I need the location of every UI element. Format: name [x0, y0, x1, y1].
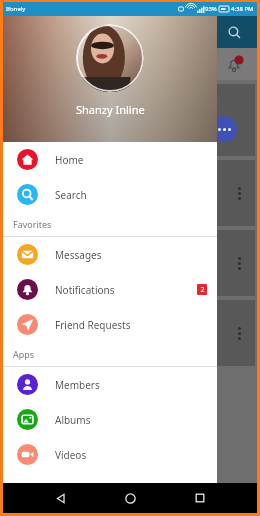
staticText: Apps — [13, 348, 35, 360]
staticText: Ifonely — [6, 5, 26, 13]
button[interactable]: Back — [47, 485, 73, 511]
staticText: Members — [55, 378, 100, 392]
staticText: Messages — [55, 248, 102, 262]
button[interactable]: Messages — [3, 237, 217, 272]
staticText: Videos — [55, 448, 87, 462]
staticText: Favorites — [13, 218, 52, 230]
staticText: Search — [55, 188, 87, 202]
staticText: Notifications — [55, 283, 115, 297]
button[interactable]: Albums — [3, 402, 217, 437]
button[interactable]: Videos — [3, 437, 217, 472]
button[interactable]: Home — [3, 142, 217, 177]
button[interactable]: Home — [117, 485, 143, 511]
staticText: Albums — [55, 413, 91, 427]
button[interactable]: Search — [223, 21, 245, 43]
staticText: 2 — [200, 285, 205, 295]
button[interactable]: Friend Requests — [3, 307, 217, 342]
button[interactable]: Search — [3, 177, 217, 212]
staticText: 4:38 PM — [231, 5, 254, 13]
staticText: Shanzy Inline — [76, 102, 145, 117]
button[interactable]: Notifications — [3, 272, 217, 307]
staticText: 93% — [205, 5, 217, 13]
staticText: Home — [55, 153, 84, 167]
button[interactable]: Recents — [187, 485, 213, 511]
button[interactable]: Members — [3, 367, 217, 402]
staticText: Friend Requests — [55, 318, 131, 332]
